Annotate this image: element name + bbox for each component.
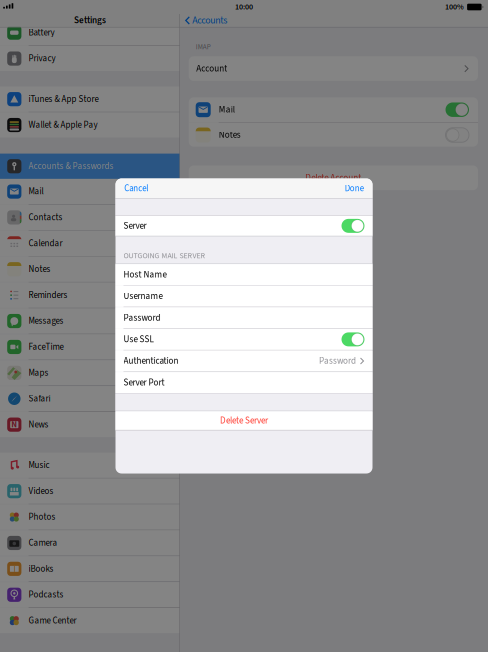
staticText: Photos [29,511,56,523]
button[interactable]: iTunes & App Store [0,86,180,112]
staticText: Account [196,62,227,75]
button[interactable]: Game Center [0,608,180,633]
button[interactable]: Messages [0,308,180,334]
staticText: Use SSL [123,333,153,346]
button[interactable]: iBooks [0,556,180,581]
button[interactable]: Delete Server [115,411,372,430]
button[interactable]: FaceTime [0,334,180,360]
button[interactable]: Wallet & Apple Pay [0,112,180,138]
staticText: Done [345,182,364,195]
staticText: Mail [219,103,235,116]
button[interactable]: Videos [0,478,180,504]
button[interactable]: Maps [0,360,180,385]
button[interactable]: Photos [0,504,180,530]
staticText: Settings [74,14,106,27]
staticText: Wallet & Apple Pay [29,119,98,131]
staticText: Password [123,311,160,324]
staticText: Safari [29,392,51,405]
button[interactable]: Server [115,216,372,236]
staticText: OUTGOING MAIL SERVER [123,250,204,261]
staticText: Authentication [123,354,178,367]
button[interactable]: Camera [0,530,180,556]
button[interactable]: Safari [0,386,180,411]
staticText: Podcasts [29,588,64,601]
button[interactable]: Delete Account [189,165,478,190]
button[interactable]: Authentication [115,350,372,371]
button[interactable]: Music [0,453,180,478]
staticText: Host Name [123,268,166,281]
staticText: Notes [219,128,241,141]
staticText: Camera [29,537,58,549]
button[interactable]: N [0,412,180,437]
staticText: Battery [29,26,55,39]
button[interactable]: Contacts [0,205,180,230]
staticText: Videos [29,485,54,497]
staticText: Server Port [123,376,164,389]
button[interactable]: Battery [0,20,180,45]
button[interactable]: Reminders [0,282,180,308]
staticText: Cancel [124,182,148,195]
button[interactable]: Calendar [0,231,180,256]
staticText: 10:00 [235,1,253,13]
staticText: Maps [29,366,49,379]
button[interactable]: Host Name [115,264,372,285]
staticText: Messages [29,315,64,327]
staticText: Game Center [29,614,77,627]
staticText: Notes [29,263,51,276]
staticText: Accounts & Passwords [29,160,114,173]
staticText: N [11,418,17,431]
staticText: Password [319,354,356,367]
button[interactable]: Accounts & Passwords [0,154,180,179]
staticText: Server [123,219,146,232]
staticText: Music [29,459,50,472]
button[interactable]: Notes [0,257,180,282]
staticText: News [29,418,49,431]
button[interactable]: Password [115,307,372,328]
staticText: Mail [29,185,44,198]
button[interactable]: Cancel [115,178,154,198]
button[interactable]: Username [115,286,372,307]
button[interactable]: Done [339,178,372,198]
button[interactable]: Use SSL [115,329,372,350]
button[interactable]: Accounts [180,0,227,27]
button[interactable]: Privacy [0,46,180,71]
button[interactable]: Server Port [115,372,372,393]
button[interactable]: Mail [0,179,180,204]
staticText: iBooks [29,562,54,575]
staticText: Delete Server [220,414,268,427]
staticText: iTunes & App Store [29,93,99,105]
staticText: Calendar [29,237,63,250]
button[interactable]: Account [189,56,478,81]
button[interactable]: Mail [189,97,478,122]
staticText: Delete Account [305,171,361,184]
staticText: Username [123,290,162,303]
staticText: FaceTime [29,341,64,353]
button[interactable]: Podcasts [0,582,180,607]
staticText: Accounts [192,13,227,27]
staticText: Reminders [29,289,68,301]
staticText: IMAP [196,42,211,52]
staticText: Privacy [29,52,56,65]
staticText: Contacts [29,211,63,224]
button[interactable]: Notes [189,123,478,147]
staticText: 100% [445,1,464,13]
